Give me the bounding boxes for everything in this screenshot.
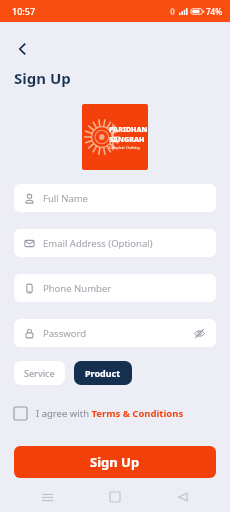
button[interactable]: Back <box>170 484 196 510</box>
button[interactable]: Password <box>14 319 216 347</box>
staticText: Full Name <box>43 192 206 205</box>
button[interactable]: Phone Number <box>14 274 216 302</box>
staticText: 74% <box>206 6 222 17</box>
button[interactable]: Back <box>6 32 40 66</box>
button[interactable]: Home <box>102 484 128 510</box>
button[interactable]: I agree with Terms & Conditions <box>14 407 184 420</box>
button[interactable]: Sign Up <box>14 446 216 478</box>
staticText: Password <box>43 327 193 340</box>
staticText: SANGRAH <box>109 135 145 145</box>
staticText: Complete Clothing <box>109 145 140 150</box>
staticText: PARIDHAN <box>109 125 148 135</box>
button[interactable]: Full Name <box>14 184 216 212</box>
button[interactable]: Show password <box>193 327 206 340</box>
staticText: I agree with Terms & Conditions <box>36 407 184 420</box>
staticText: Service <box>24 367 55 379</box>
staticText: Phone Number <box>43 282 206 295</box>
staticText: Sign Up <box>14 68 71 88</box>
staticText: Sign Up <box>90 453 140 471</box>
staticText: 10:57 <box>12 5 36 17</box>
button[interactable]: Email Address (Optional) <box>14 229 216 257</box>
button[interactable]: Recent apps <box>34 484 60 510</box>
button[interactable]: Service <box>14 361 65 385</box>
staticText: Email Address (Optional) <box>43 237 206 250</box>
staticText: Product <box>85 367 121 379</box>
button[interactable]: Product <box>74 361 132 385</box>
